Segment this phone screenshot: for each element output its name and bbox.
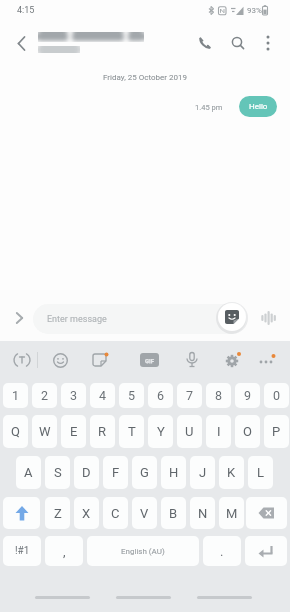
button[interactable]: 3 bbox=[61, 383, 86, 408]
button[interactable]: !#1 bbox=[3, 536, 41, 566]
staticText: Q bbox=[11, 424, 20, 439]
staticText: H bbox=[169, 465, 179, 480]
button[interactable]: 2 bbox=[32, 383, 57, 408]
staticText: 1.45 pm bbox=[195, 103, 223, 112]
button[interactable]: I bbox=[206, 415, 231, 448]
staticText: N bbox=[198, 506, 208, 521]
button[interactable]: , bbox=[45, 536, 83, 566]
button[interactable]: L bbox=[248, 456, 273, 489]
staticText: 0 bbox=[273, 388, 281, 403]
button[interactable]: Z bbox=[45, 497, 70, 529]
staticText: M bbox=[226, 506, 238, 521]
staticText: T bbox=[128, 424, 136, 439]
button[interactable]: H bbox=[161, 456, 186, 489]
staticText: 4:15 bbox=[17, 5, 35, 16]
staticText: E bbox=[70, 424, 78, 439]
staticText: Friday, 25 October 2019 bbox=[103, 73, 187, 82]
button[interactable]: Y bbox=[148, 415, 173, 448]
button[interactable]: 0 bbox=[264, 383, 289, 408]
staticText: Y bbox=[157, 424, 165, 439]
staticText: X bbox=[82, 506, 91, 521]
staticText: 1 bbox=[12, 388, 20, 403]
button[interactable] bbox=[3, 497, 40, 529]
button[interactable]: GIF bbox=[135, 347, 163, 373]
staticText: Enter message bbox=[47, 314, 107, 325]
button[interactable]: O bbox=[235, 415, 260, 448]
button[interactable] bbox=[256, 30, 280, 56]
button[interactable] bbox=[254, 347, 280, 373]
button[interactable]: Q bbox=[3, 415, 28, 448]
staticText: 5 bbox=[128, 388, 136, 403]
staticText: !#1 bbox=[15, 545, 30, 557]
staticText: D bbox=[82, 465, 91, 480]
button[interactable]: C bbox=[103, 497, 128, 529]
button[interactable]: S bbox=[45, 456, 70, 489]
staticText: G bbox=[140, 465, 149, 480]
staticText: Hello bbox=[249, 102, 268, 111]
staticText: B bbox=[169, 506, 178, 521]
button[interactable]: Hello bbox=[239, 96, 277, 117]
staticText: F bbox=[112, 465, 120, 480]
staticText: 6 bbox=[157, 388, 165, 403]
button[interactable] bbox=[179, 347, 205, 373]
staticText: R bbox=[98, 424, 107, 439]
button[interactable]: 1 bbox=[3, 383, 28, 408]
button[interactable] bbox=[245, 536, 287, 566]
staticText: U bbox=[185, 424, 194, 439]
staticText: 8 bbox=[215, 388, 223, 403]
staticText: J bbox=[199, 465, 207, 480]
button[interactable] bbox=[191, 30, 217, 56]
staticText: O bbox=[243, 424, 252, 439]
button[interactable]: D bbox=[74, 456, 99, 489]
staticText: Z bbox=[54, 506, 62, 521]
button[interactable]: M bbox=[219, 497, 244, 529]
button[interactable]: 4 bbox=[90, 383, 115, 408]
button[interactable]: A bbox=[16, 456, 41, 489]
button[interactable]: B bbox=[161, 497, 186, 529]
staticText: 9 bbox=[244, 388, 252, 403]
staticText: C bbox=[111, 506, 120, 521]
staticText: W bbox=[39, 424, 51, 439]
button[interactable]: F bbox=[103, 456, 128, 489]
button[interactable]: T bbox=[119, 415, 144, 448]
button[interactable]: 8 bbox=[206, 383, 231, 408]
button[interactable]: W bbox=[32, 415, 57, 448]
button[interactable] bbox=[256, 306, 280, 330]
button[interactable] bbox=[87, 347, 113, 373]
button[interactable] bbox=[47, 347, 73, 373]
button[interactable]: J bbox=[190, 456, 215, 489]
staticText: GIF bbox=[145, 357, 155, 364]
button[interactable]: . bbox=[203, 536, 241, 566]
button[interactable]: 9 bbox=[235, 383, 260, 408]
button[interactable]: Enter message bbox=[33, 304, 246, 334]
staticText: I bbox=[217, 424, 221, 439]
button[interactable]: E bbox=[61, 415, 86, 448]
button[interactable] bbox=[218, 303, 246, 331]
staticText: S bbox=[54, 465, 62, 480]
staticText: 7 bbox=[186, 388, 194, 403]
button[interactable]: R bbox=[90, 415, 115, 448]
button[interactable] bbox=[225, 30, 251, 56]
button[interactable] bbox=[8, 307, 30, 329]
staticText: V bbox=[140, 506, 149, 521]
staticText: L bbox=[257, 465, 265, 480]
button[interactable]: 5 bbox=[119, 383, 144, 408]
staticText: 2 bbox=[41, 388, 49, 403]
button[interactable]: P bbox=[264, 415, 289, 448]
button[interactable]: U bbox=[177, 415, 202, 448]
button[interactable] bbox=[8, 30, 34, 56]
button[interactable] bbox=[219, 347, 245, 373]
button[interactable]: V bbox=[132, 497, 157, 529]
button[interactable]: X bbox=[74, 497, 99, 529]
button[interactable] bbox=[246, 497, 287, 529]
staticText: K bbox=[227, 465, 236, 480]
button[interactable] bbox=[9, 347, 35, 373]
button[interactable]: K bbox=[219, 456, 244, 489]
button[interactable]: 6 bbox=[148, 383, 173, 408]
staticText: 93% bbox=[247, 6, 262, 15]
button[interactable]: N bbox=[190, 497, 215, 529]
button[interactable]: 7 bbox=[177, 383, 202, 408]
staticText: P bbox=[272, 424, 281, 439]
button[interactable]: G bbox=[132, 456, 157, 489]
button[interactable]: English (AU) bbox=[87, 536, 199, 566]
